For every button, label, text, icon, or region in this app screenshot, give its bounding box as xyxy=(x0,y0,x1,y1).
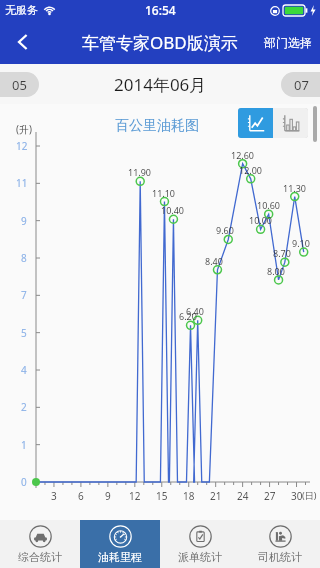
staticText: 18 xyxy=(183,489,195,503)
staticText: 8.70 xyxy=(273,247,291,259)
button[interactable]: 综合统计 xyxy=(0,520,80,568)
staticText: 部门选择 xyxy=(264,35,312,50)
staticText: 11 xyxy=(16,176,28,190)
staticText: 11.90 xyxy=(128,166,152,178)
staticText: 9.60 xyxy=(216,224,234,236)
staticText: 12.00 xyxy=(239,164,263,176)
staticText: 10.40 xyxy=(161,204,185,216)
staticText: 7 xyxy=(21,288,27,302)
staticText: 15 xyxy=(156,489,168,503)
button[interactable]: 05 xyxy=(0,72,39,97)
staticText: 11.10 xyxy=(152,187,176,199)
staticText: 21 xyxy=(210,489,222,503)
staticText: 3 xyxy=(51,489,57,503)
button[interactable]: 油耗里程 xyxy=(80,520,160,568)
staticText: 6.40 xyxy=(186,305,204,317)
staticText: 派单统计 xyxy=(178,550,222,564)
staticText: 无服务 xyxy=(5,3,38,17)
staticText: 07 xyxy=(294,76,309,94)
button[interactable]: Bar chart xyxy=(273,108,308,138)
staticText: 05 xyxy=(12,76,27,94)
staticText: 24 xyxy=(237,489,249,503)
staticText: 6.20 xyxy=(179,310,197,322)
staticText: 8.40 xyxy=(205,255,223,267)
staticText: 12 xyxy=(16,139,28,153)
staticText: 9.10 xyxy=(292,237,310,249)
staticText: (升) xyxy=(16,122,32,136)
staticText: 油耗里程 xyxy=(98,550,142,564)
button[interactable]: Line chart xyxy=(238,108,273,138)
staticText: (日) xyxy=(302,489,317,501)
staticText: 车管专家OBD版演示 xyxy=(82,31,238,54)
staticText: 综合统计 xyxy=(18,550,62,564)
staticText: 8.00 xyxy=(267,265,285,277)
staticText: 27 xyxy=(264,489,276,503)
staticText: 百公里油耗图 xyxy=(115,117,199,135)
button[interactable]: 司机统计 xyxy=(240,520,320,568)
staticText: 10.00 xyxy=(249,214,273,226)
staticText: 司机统计 xyxy=(258,550,302,564)
staticText: 5 xyxy=(21,326,27,340)
staticText: 9 xyxy=(105,489,111,503)
button[interactable]: 派单统计 xyxy=(160,520,240,568)
staticText: 16:54 xyxy=(145,2,176,18)
staticText: 0 xyxy=(21,475,27,489)
staticText: 10.60 xyxy=(257,199,281,211)
staticText: 12.60 xyxy=(231,149,255,161)
staticText: 4 xyxy=(21,363,27,377)
button[interactable]: Back xyxy=(0,20,46,64)
staticText: 11.30 xyxy=(283,182,307,194)
staticText: 1 xyxy=(21,438,27,452)
staticText: 6 xyxy=(78,489,84,503)
button[interactable]: 部门选择 xyxy=(260,27,316,58)
button[interactable]: 07 xyxy=(281,72,320,97)
staticText: 8 xyxy=(21,251,27,265)
staticText: 9 xyxy=(21,214,27,228)
staticText: 2014年06月 xyxy=(114,73,207,96)
staticText: 2 xyxy=(21,400,27,414)
staticText: 30 xyxy=(291,489,303,503)
staticText: 12 xyxy=(129,489,141,503)
